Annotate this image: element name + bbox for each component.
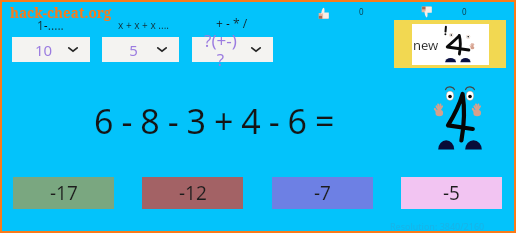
- button[interactable]: 5: [102, 37, 179, 62]
- staticText: 1-.....: [37, 17, 64, 33]
- staticText: ?(+-) ?: [192, 29, 249, 71]
- button[interactable]: 10: [12, 37, 90, 62]
- staticText: -12: [179, 180, 207, 206]
- staticText: -7: [314, 180, 331, 206]
- staticText: Resolution: 3840/2160: [390, 220, 485, 232]
- staticText: -5: [443, 180, 460, 206]
- button[interactable]: new: [394, 20, 506, 68]
- staticText: 0: [462, 6, 467, 17]
- button[interactable]: -17: [13, 177, 114, 209]
- staticText: new: [413, 36, 439, 54]
- staticText: -17: [50, 180, 78, 206]
- staticText: + - * /: [216, 15, 248, 31]
- staticText: x + x + x ....: [118, 18, 170, 32]
- button[interactable]: Dislike: [421, 6, 432, 18]
- staticText: hack-cheat.org: [10, 4, 112, 22]
- button[interactable]: ?(+-) ?: [192, 37, 273, 62]
- staticText: 5: [102, 40, 165, 60]
- button[interactable]: Like: [318, 7, 329, 19]
- staticText: 10: [12, 40, 75, 60]
- staticText: 0: [359, 6, 364, 17]
- button[interactable]: -5: [401, 177, 502, 209]
- button[interactable]: -12: [142, 177, 243, 209]
- staticText: 6 - 8 - 3 + 4 - 6 =: [94, 98, 334, 144]
- button[interactable]: -7: [272, 177, 373, 209]
